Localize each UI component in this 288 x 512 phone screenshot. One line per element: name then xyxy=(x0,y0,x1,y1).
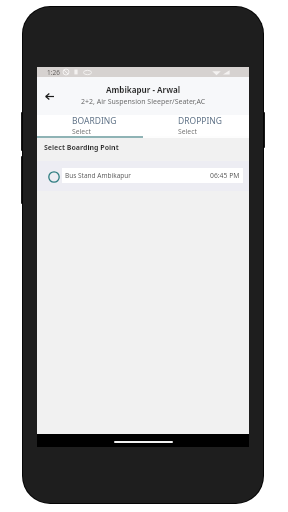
staticText: Select Boarding Point xyxy=(44,143,119,153)
staticText: 1:26 xyxy=(47,68,60,77)
button[interactable]: Back xyxy=(40,87,58,105)
button[interactable]: BOARDING xyxy=(37,115,143,136)
staticText: Select xyxy=(72,127,91,136)
staticText: BOARDING xyxy=(72,115,117,127)
staticText: Ambikapur - Arwal xyxy=(106,84,181,95)
button[interactable]: DROPPING xyxy=(143,115,249,136)
staticText: 06:45 PM xyxy=(210,171,240,180)
staticText: 2+2, Air Suspension Sleeper/Seater,AC xyxy=(81,97,206,107)
staticText: Bus Stand Ambikapur xyxy=(65,171,132,180)
staticText: DROPPING xyxy=(178,115,222,127)
button[interactable]: Bus Stand Ambikapur xyxy=(37,161,249,191)
staticText: Select xyxy=(178,127,197,136)
